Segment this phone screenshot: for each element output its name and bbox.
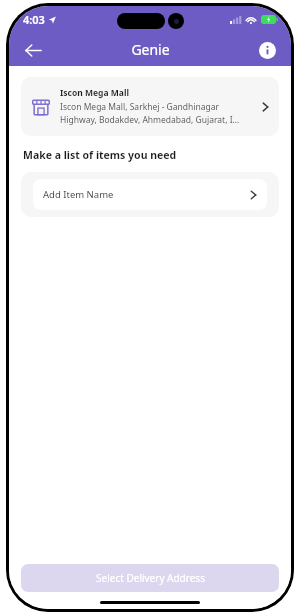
staticText: 4:03 (23, 12, 45, 27)
staticText: Make a list of items you need (23, 148, 177, 162)
staticText: Iscon Mega Mall (60, 87, 129, 99)
button[interactable]: Iscon Mega Mall (21, 77, 279, 136)
button[interactable]: Select Delivery Address (21, 564, 279, 592)
staticText: Iscon Mega Mall, Sarkhej - Gandhinagar (60, 101, 219, 113)
staticText: Highway, Bodakdev, Ahmedabad, Gujarat, I… (60, 114, 240, 126)
button[interactable]: Information (253, 36, 281, 64)
staticText: Add Item Name (43, 188, 250, 201)
staticText: Select Delivery Address (96, 571, 205, 585)
button[interactable]: Back (17, 34, 49, 66)
staticText: Genie (131, 40, 170, 59)
button[interactable]: Add Item Name (33, 179, 267, 210)
